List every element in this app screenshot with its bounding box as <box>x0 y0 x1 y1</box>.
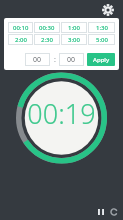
button[interactable]: 5:00 <box>88 34 115 45</box>
staticText: 5:00 <box>96 36 108 44</box>
button[interactable]: 2:30 <box>34 34 60 45</box>
button[interactable]: 00 <box>25 53 50 66</box>
staticText: Apply <box>93 56 110 64</box>
button[interactable]: Pause <box>94 205 107 218</box>
staticText: 00:19 <box>27 95 96 132</box>
button[interactable]: 00:30 <box>34 22 60 33</box>
button[interactable]: 3:00 <box>61 34 87 45</box>
staticText: 2:00 <box>15 36 27 44</box>
button[interactable]: Apply <box>87 53 115 66</box>
staticText: 00:10 <box>13 24 29 32</box>
staticText: 1:30 <box>96 24 108 32</box>
staticText: 1:00 <box>68 24 80 32</box>
staticText: 3:00 <box>68 36 80 44</box>
button[interactable]: 00:10 <box>8 22 33 33</box>
button[interactable]: 1:00 <box>61 22 87 33</box>
button[interactable]: 00 <box>59 53 84 66</box>
button[interactable]: 2:00 <box>8 34 33 45</box>
staticText: 00:30 <box>39 24 55 32</box>
button[interactable]: Settings <box>99 1 117 19</box>
button[interactable]: 1:30 <box>88 22 115 33</box>
staticText: 00 <box>33 55 42 65</box>
staticText: 00 <box>67 55 76 65</box>
staticText: 2:30 <box>41 36 53 44</box>
button[interactable]: Reset <box>107 205 120 218</box>
staticText: : <box>54 55 56 65</box>
